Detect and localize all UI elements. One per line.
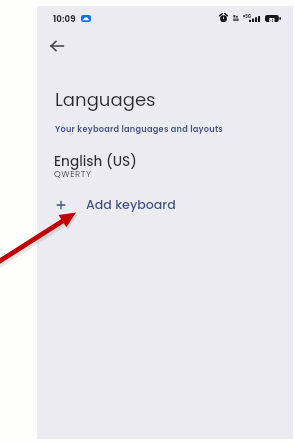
staticText: English (US) — [54, 152, 137, 171]
staticText: 81 — [269, 16, 275, 24]
staticText: Your keyboard languages and layouts — [55, 123, 224, 134]
button[interactable]: Navigate up — [43, 32, 71, 60]
staticText: Add keyboard — [86, 196, 176, 214]
button[interactable]: English (US) — [37, 148, 293, 189]
button[interactable]: Add keyboard — [37, 190, 293, 220]
staticText: 5G — [245, 13, 252, 19]
staticText: Languages — [55, 87, 156, 112]
staticText: 10:09 — [53, 13, 76, 25]
staticText: QWERTY — [54, 168, 92, 180]
